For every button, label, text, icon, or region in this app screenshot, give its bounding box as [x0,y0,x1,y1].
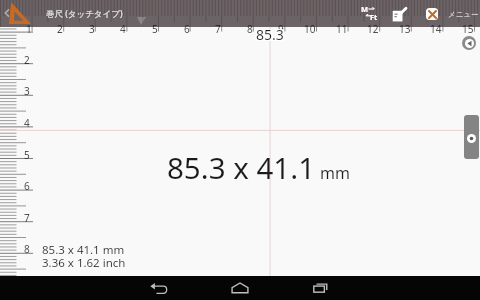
staticText: 85.3 [257,26,285,45]
staticText: 15 [462,22,474,36]
button[interactable]: Back [0,6,14,20]
staticText: 7 [215,22,221,36]
staticText: 85.3 [255,24,283,43]
staticText: 85.3 x 41.1 mm 3.36 x 1.62 inch [42,242,126,270]
staticText: 5 [152,22,158,36]
staticText: 4 [120,22,126,36]
staticText: メニュー [448,10,479,19]
staticText: M [361,4,369,14]
staticText: 85.3 [256,26,284,45]
button[interactable]: Home [220,276,260,300]
staticText: 巻尺 (タッチタイプ) [46,8,123,20]
staticText: 13 [399,22,411,36]
staticText: 3 [24,84,30,98]
staticText: Ft [370,12,378,22]
staticText: 9 [278,22,284,36]
staticText: 6 [24,179,30,193]
staticText: 14 [430,22,442,36]
staticText: 85.3 [255,25,283,44]
button[interactable]: Previous measurement [462,36,476,50]
button[interactable]: Menu [447,0,480,27]
staticText: 11 [336,22,348,36]
staticText: 1 [26,22,32,36]
button[interactable]: Move measurement edge [464,115,479,159]
staticText: 8 [24,242,30,256]
staticText: 85.3 [256,25,284,44]
button[interactable]: Recent apps [301,276,341,300]
staticText: mm [320,162,350,184]
staticText: 10 [304,22,316,36]
staticText: 85.3 [255,26,283,45]
button[interactable]: Edit note [384,0,414,27]
staticText: 3 [89,22,95,36]
button[interactable]: Back [139,276,179,300]
staticText: 7 [24,211,30,225]
staticText: 2 [57,22,63,36]
staticText: 8 [247,22,253,36]
staticText: 85.3 [257,24,285,43]
button[interactable]: Clear measurement [418,0,446,27]
staticText: 2 [24,53,30,67]
staticText: 6 [184,22,190,36]
staticText: 12 [367,22,379,36]
staticText: 85.3 x 41.1 [167,147,316,187]
staticText: 85.3 [256,24,284,43]
staticText: 85.3 [257,25,285,44]
button[interactable]: Switch units metre / feet [355,0,385,27]
staticText: 4 [24,116,30,130]
staticText: 5 [24,148,30,162]
